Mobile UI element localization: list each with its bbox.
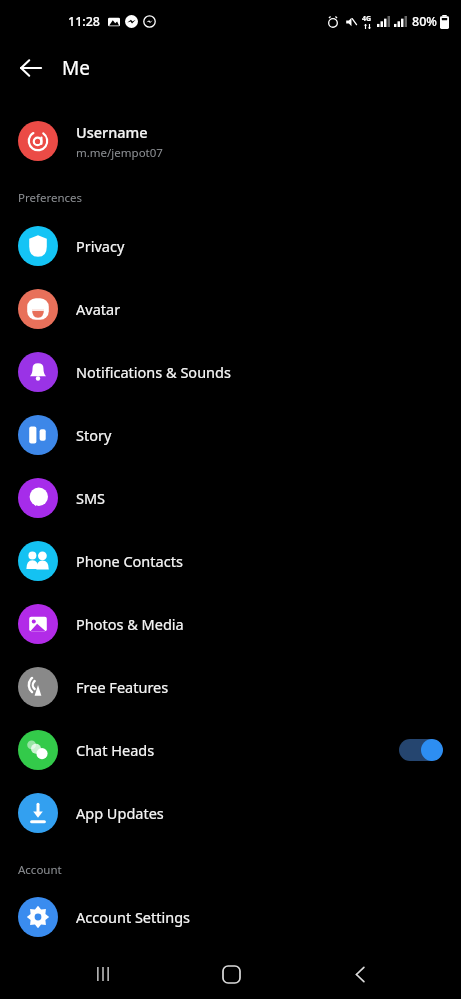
button[interactable]: Chat Heads <box>0 718 461 781</box>
button[interactable]: Photos & Media <box>0 592 461 655</box>
staticText: Me <box>62 55 90 81</box>
staticText: Preferences <box>18 190 83 206</box>
staticText: 11:28 <box>68 13 101 30</box>
button[interactable]: Phone Contacts <box>0 529 461 592</box>
staticText: Privacy <box>76 236 443 256</box>
button[interactable]: Account Settings <box>0 886 461 948</box>
staticText: Photos & Media <box>76 614 443 634</box>
button[interactable]: SMS <box>0 466 461 529</box>
staticText: Account <box>18 862 62 878</box>
staticText: Username <box>76 122 148 142</box>
staticText: m.me/jempot07 <box>76 145 163 161</box>
button[interactable]: Chat Heads toggle, on <box>399 739 443 761</box>
staticText: Phone Contacts <box>76 551 443 571</box>
button[interactable]: Avatar <box>0 277 461 340</box>
staticText: SMS <box>76 488 443 508</box>
staticText: Free Features <box>76 677 443 697</box>
button[interactable]: Username <box>0 110 461 172</box>
button[interactable]: Free Features <box>0 655 461 718</box>
button[interactable]: App Updates <box>0 781 461 844</box>
button[interactable]: Back <box>342 956 378 992</box>
staticText: Chat Heads <box>76 740 399 760</box>
button[interactable]: Home <box>213 956 249 992</box>
button[interactable]: Back <box>10 47 52 89</box>
button[interactable]: Story <box>0 403 461 466</box>
button[interactable]: Privacy <box>0 214 461 277</box>
button[interactable]: Notifications & Sounds <box>0 340 461 403</box>
button[interactable]: Recent apps <box>86 957 120 991</box>
staticText: Avatar <box>76 299 443 319</box>
staticText: App Updates <box>76 803 443 823</box>
staticText: Notifications & Sounds <box>76 362 443 382</box>
staticText: 80% <box>412 13 437 30</box>
staticText: Account Settings <box>76 907 191 927</box>
staticText: Story <box>76 425 443 445</box>
staticText: 4G <box>362 14 372 24</box>
